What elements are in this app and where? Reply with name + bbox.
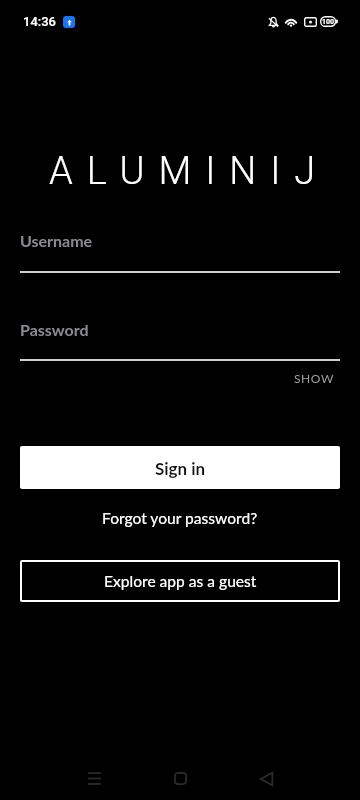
button[interactable]: SHOW xyxy=(280,363,360,391)
staticText: Password xyxy=(20,320,89,339)
button[interactable]: Home xyxy=(156,754,204,800)
staticText: Sign in xyxy=(155,458,206,478)
button[interactable]: Recent apps xyxy=(70,754,118,800)
button[interactable]: Explore app as a guest xyxy=(20,560,340,602)
button[interactable]: Sign in xyxy=(20,446,340,489)
button[interactable]: Username xyxy=(20,223,340,273)
staticText: Username xyxy=(20,231,93,250)
staticText: Explore app as a guest xyxy=(104,572,257,591)
button[interactable]: Forgot your password? xyxy=(90,503,270,534)
button[interactable]: Back xyxy=(242,755,290,800)
button[interactable]: Password xyxy=(20,311,340,361)
staticText: 100 xyxy=(322,18,335,26)
staticText: ALUMINIJ xyxy=(9,149,360,194)
staticText: SHOW xyxy=(294,371,334,385)
staticText: Forgot your password? xyxy=(102,509,258,528)
staticText: 14:36 xyxy=(23,14,57,29)
